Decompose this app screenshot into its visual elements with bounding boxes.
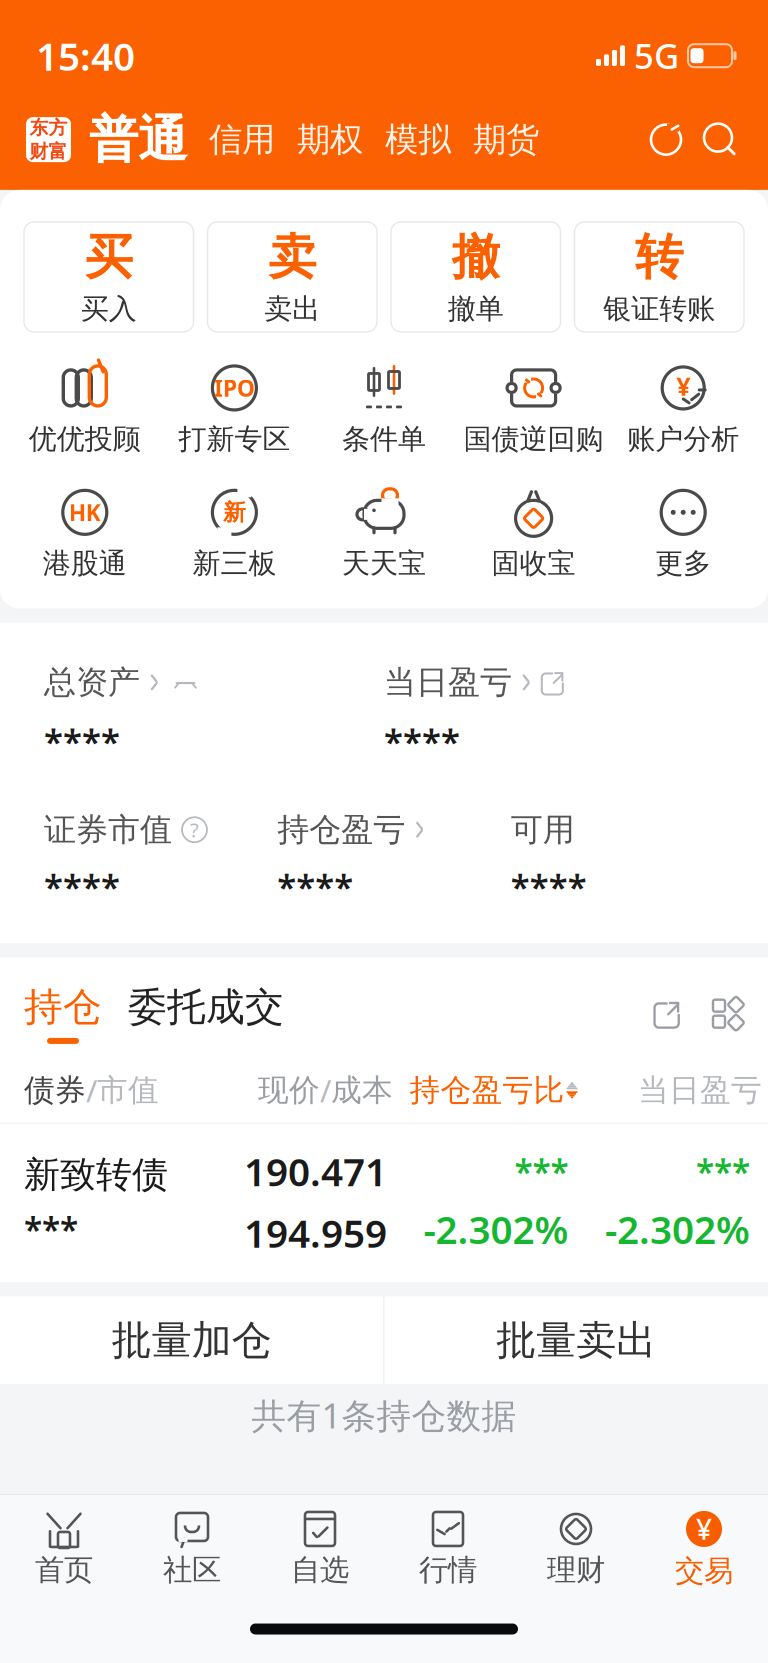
staticText: 理财 — [547, 1552, 605, 1588]
staticText: 信用 — [209, 119, 275, 160]
staticText: HK — [69, 497, 101, 527]
staticText: 更多 — [655, 546, 711, 581]
staticText: 成本 — [331, 1071, 393, 1109]
button[interactable]: 期货 — [451, 119, 539, 160]
staticText: **** — [44, 863, 120, 909]
staticText: 卖 — [268, 228, 316, 287]
staticText: 交易 — [675, 1553, 733, 1589]
staticText: **** — [44, 718, 120, 764]
button[interactable]: 固收宝 — [459, 482, 608, 585]
staticText: 持仓 — [24, 983, 102, 1031]
button[interactable]: 天天宝 — [309, 482, 459, 585]
staticText: 可用 — [511, 810, 575, 849]
button[interactable]: 行情 — [384, 1508, 512, 1588]
button[interactable]: 持仓盈亏比 — [409, 1071, 577, 1109]
button[interactable]: 撤 — [391, 222, 560, 332]
button[interactable]: 新 — [160, 482, 309, 585]
button[interactable]: 买 — [24, 222, 193, 332]
staticText: -2.302% — [605, 1203, 750, 1255]
staticText: 首页 — [35, 1552, 93, 1588]
staticText: 买入 — [81, 292, 137, 326]
staticText: 天天宝 — [342, 546, 426, 581]
button[interactable]: 国债逆回购 — [459, 358, 608, 460]
button[interactable]: 批量卖出 — [384, 1296, 768, 1384]
staticText: ? — [190, 816, 199, 843]
staticText: 共有1条持仓数据 — [251, 1392, 516, 1438]
staticText: 194.959 — [244, 1207, 387, 1258]
staticText: 模拟 — [385, 119, 451, 160]
staticText: 撤单 — [448, 292, 504, 326]
staticText: 账户分析 — [627, 422, 739, 456]
button[interactable]: 刷新 — [644, 118, 688, 162]
staticText: *** — [24, 1207, 78, 1251]
staticText: 撤 — [452, 228, 500, 287]
staticText: 持仓盈亏比 — [409, 1071, 564, 1109]
button[interactable]: ¥ — [640, 1507, 768, 1589]
staticText: 普通 — [89, 109, 187, 170]
button[interactable]: ¥ — [608, 358, 758, 460]
staticText: 持仓盈亏 — [277, 810, 405, 849]
staticText: 当日盈亏 — [638, 1071, 762, 1109]
staticText: 委托成交 — [128, 983, 284, 1031]
button[interactable]: 搜索 — [688, 118, 742, 162]
staticText: 转 — [635, 228, 683, 287]
button[interactable]: 优优投顾 — [10, 358, 160, 460]
button[interactable]: 设置列 — [684, 997, 744, 1031]
staticText: IPO — [214, 373, 255, 403]
button[interactable]: 证券市值 — [44, 810, 207, 849]
button[interactable]: 委托成交 — [102, 983, 284, 1044]
staticText: **** — [384, 718, 460, 764]
staticText: *** — [514, 1149, 568, 1193]
staticText: 买 — [85, 228, 133, 287]
button[interactable]: 批量加仓 — [0, 1296, 383, 1384]
button[interactable]: 持仓盈亏 — [277, 810, 425, 849]
staticText: 打新专区 — [178, 422, 290, 456]
staticText: 总资产 — [44, 663, 140, 702]
button[interactable]: 卖 — [207, 222, 377, 332]
button[interactable]: 信用 — [187, 119, 275, 160]
staticText: ¥ — [676, 369, 690, 403]
button[interactable]: 东方财富 — [26, 117, 71, 162]
staticText: ¥ — [696, 1510, 712, 1548]
button[interactable]: HK — [10, 482, 160, 585]
button[interactable]: 社区 — [128, 1508, 256, 1588]
staticText: 现价 — [258, 1071, 320, 1109]
staticText: 卖出 — [264, 292, 320, 326]
button[interactable]: 新致转债 — [0, 1124, 768, 1282]
staticText: 批量卖出 — [496, 1316, 656, 1365]
staticText: **** — [277, 863, 353, 909]
button[interactable]: 转 — [574, 222, 744, 332]
staticText: 优优投顾 — [29, 422, 141, 456]
staticText: 新 — [223, 498, 246, 526]
staticText: 港股通 — [43, 546, 127, 581]
staticText: 新三板 — [192, 546, 276, 581]
button[interactable]: 总资产 — [44, 663, 202, 702]
button[interactable]: IPO — [160, 358, 309, 460]
button[interactable]: 持仓 — [24, 983, 102, 1044]
button[interactable]: 模拟 — [363, 119, 451, 160]
staticText: 社区 — [163, 1552, 221, 1588]
staticText: 行情 — [419, 1552, 477, 1588]
staticText: 期货 — [473, 119, 539, 160]
staticText: 证券市值 — [44, 810, 172, 849]
staticText: 5G — [634, 33, 679, 79]
button[interactable]: 条件单 — [309, 358, 459, 460]
staticText: / — [320, 1070, 331, 1111]
staticText: 国债逆回购 — [464, 422, 604, 456]
button[interactable]: 当日盈亏 — [384, 663, 567, 702]
button[interactable]: 理财 — [512, 1508, 640, 1588]
staticText: 自选 — [291, 1552, 349, 1588]
button[interactable]: 展开 — [653, 998, 684, 1029]
staticText: **** — [511, 863, 587, 909]
button[interactable]: 普通 — [71, 109, 187, 170]
staticText: 期权 — [297, 119, 363, 160]
button[interactable]: 首页 — [0, 1508, 128, 1588]
staticText: *** — [696, 1149, 750, 1193]
button[interactable]: 更多 — [608, 482, 758, 585]
staticText: 市值 — [97, 1071, 159, 1109]
button[interactable]: 自选 — [256, 1508, 384, 1588]
button[interactable]: 期权 — [275, 119, 363, 160]
staticText: 条件单 — [342, 422, 426, 456]
staticText: 债券 — [24, 1071, 86, 1109]
staticText: 批量加仓 — [112, 1316, 272, 1365]
